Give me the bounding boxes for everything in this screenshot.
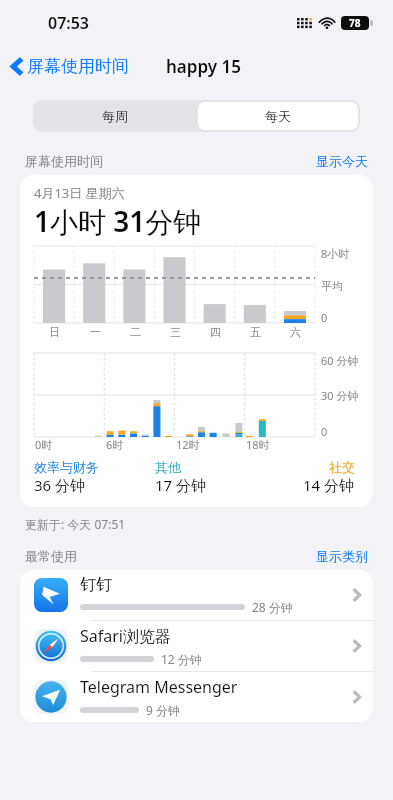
staticText: 日 bbox=[49, 325, 60, 339]
staticText: Telegram Messenger bbox=[80, 676, 238, 698]
staticText: 0时 bbox=[35, 437, 53, 452]
staticText: happy 15 bbox=[166, 55, 241, 78]
staticText: 36 分钟 bbox=[34, 475, 86, 495]
button[interactable]: Safari浏览器 bbox=[20, 621, 373, 671]
staticText: 其他 bbox=[155, 459, 181, 475]
staticText: 18时 bbox=[246, 437, 270, 452]
staticText: 四 bbox=[210, 325, 221, 339]
staticText: 1小时 31分钟 bbox=[34, 202, 202, 240]
staticText: 8小时 bbox=[321, 246, 350, 261]
staticText: 六 bbox=[290, 325, 301, 339]
staticText: 五 bbox=[250, 325, 261, 339]
staticText: 显示今天 bbox=[316, 153, 368, 169]
staticText: 二 bbox=[130, 325, 141, 339]
staticText: 更新于: 今天 07:51 bbox=[25, 516, 126, 532]
staticText: 一 bbox=[90, 325, 101, 339]
staticText: 钉钉 bbox=[80, 575, 112, 595]
staticText: 平均 bbox=[321, 279, 343, 293]
button[interactable]: 每周 bbox=[33, 100, 196, 132]
staticText: 4月13日 星期六 bbox=[34, 184, 125, 202]
staticText: 社交 bbox=[329, 459, 355, 475]
staticText: 屏幕使用时间 bbox=[25, 153, 103, 169]
staticText: 每天 bbox=[265, 108, 291, 124]
other: 查看详情 bbox=[352, 638, 361, 654]
button[interactable]: 钉钉 bbox=[20, 570, 373, 620]
staticText: 每周 bbox=[102, 108, 128, 124]
staticText: 最常使用 bbox=[25, 548, 77, 564]
staticText: 30 分钟 bbox=[321, 388, 359, 403]
staticText: 28 分钟 bbox=[252, 599, 293, 615]
staticText: 12时 bbox=[176, 437, 200, 452]
staticText: 9 分钟 bbox=[146, 702, 180, 718]
staticText: 07:53 bbox=[48, 12, 90, 34]
button[interactable]: 显示今天 bbox=[316, 153, 368, 169]
staticText: 0 bbox=[321, 310, 328, 325]
staticText: 三 bbox=[170, 325, 181, 339]
staticText: 60 分钟 bbox=[321, 353, 359, 368]
staticText: 12 分钟 bbox=[161, 651, 202, 667]
staticText: 14 分钟 bbox=[303, 475, 355, 495]
staticText: 0 bbox=[321, 424, 328, 439]
other: 查看详情 bbox=[352, 689, 361, 705]
other: 查看详情 bbox=[352, 587, 361, 603]
button[interactable]: 屏幕使用时间 bbox=[8, 52, 133, 81]
staticText: 显示类别 bbox=[316, 548, 368, 564]
staticText: 效率与财务 bbox=[34, 459, 99, 475]
staticText: 6时 bbox=[106, 437, 124, 452]
staticText: 屏幕使用时间 bbox=[27, 56, 129, 77]
staticText: 17 分钟 bbox=[155, 475, 207, 495]
button[interactable]: Telegram Messenger bbox=[20, 672, 373, 722]
button[interactable]: 显示类别 bbox=[316, 548, 368, 564]
staticText: 78 bbox=[349, 16, 361, 30]
staticText: Safari浏览器 bbox=[80, 625, 171, 647]
button[interactable]: 每天 bbox=[198, 102, 358, 130]
